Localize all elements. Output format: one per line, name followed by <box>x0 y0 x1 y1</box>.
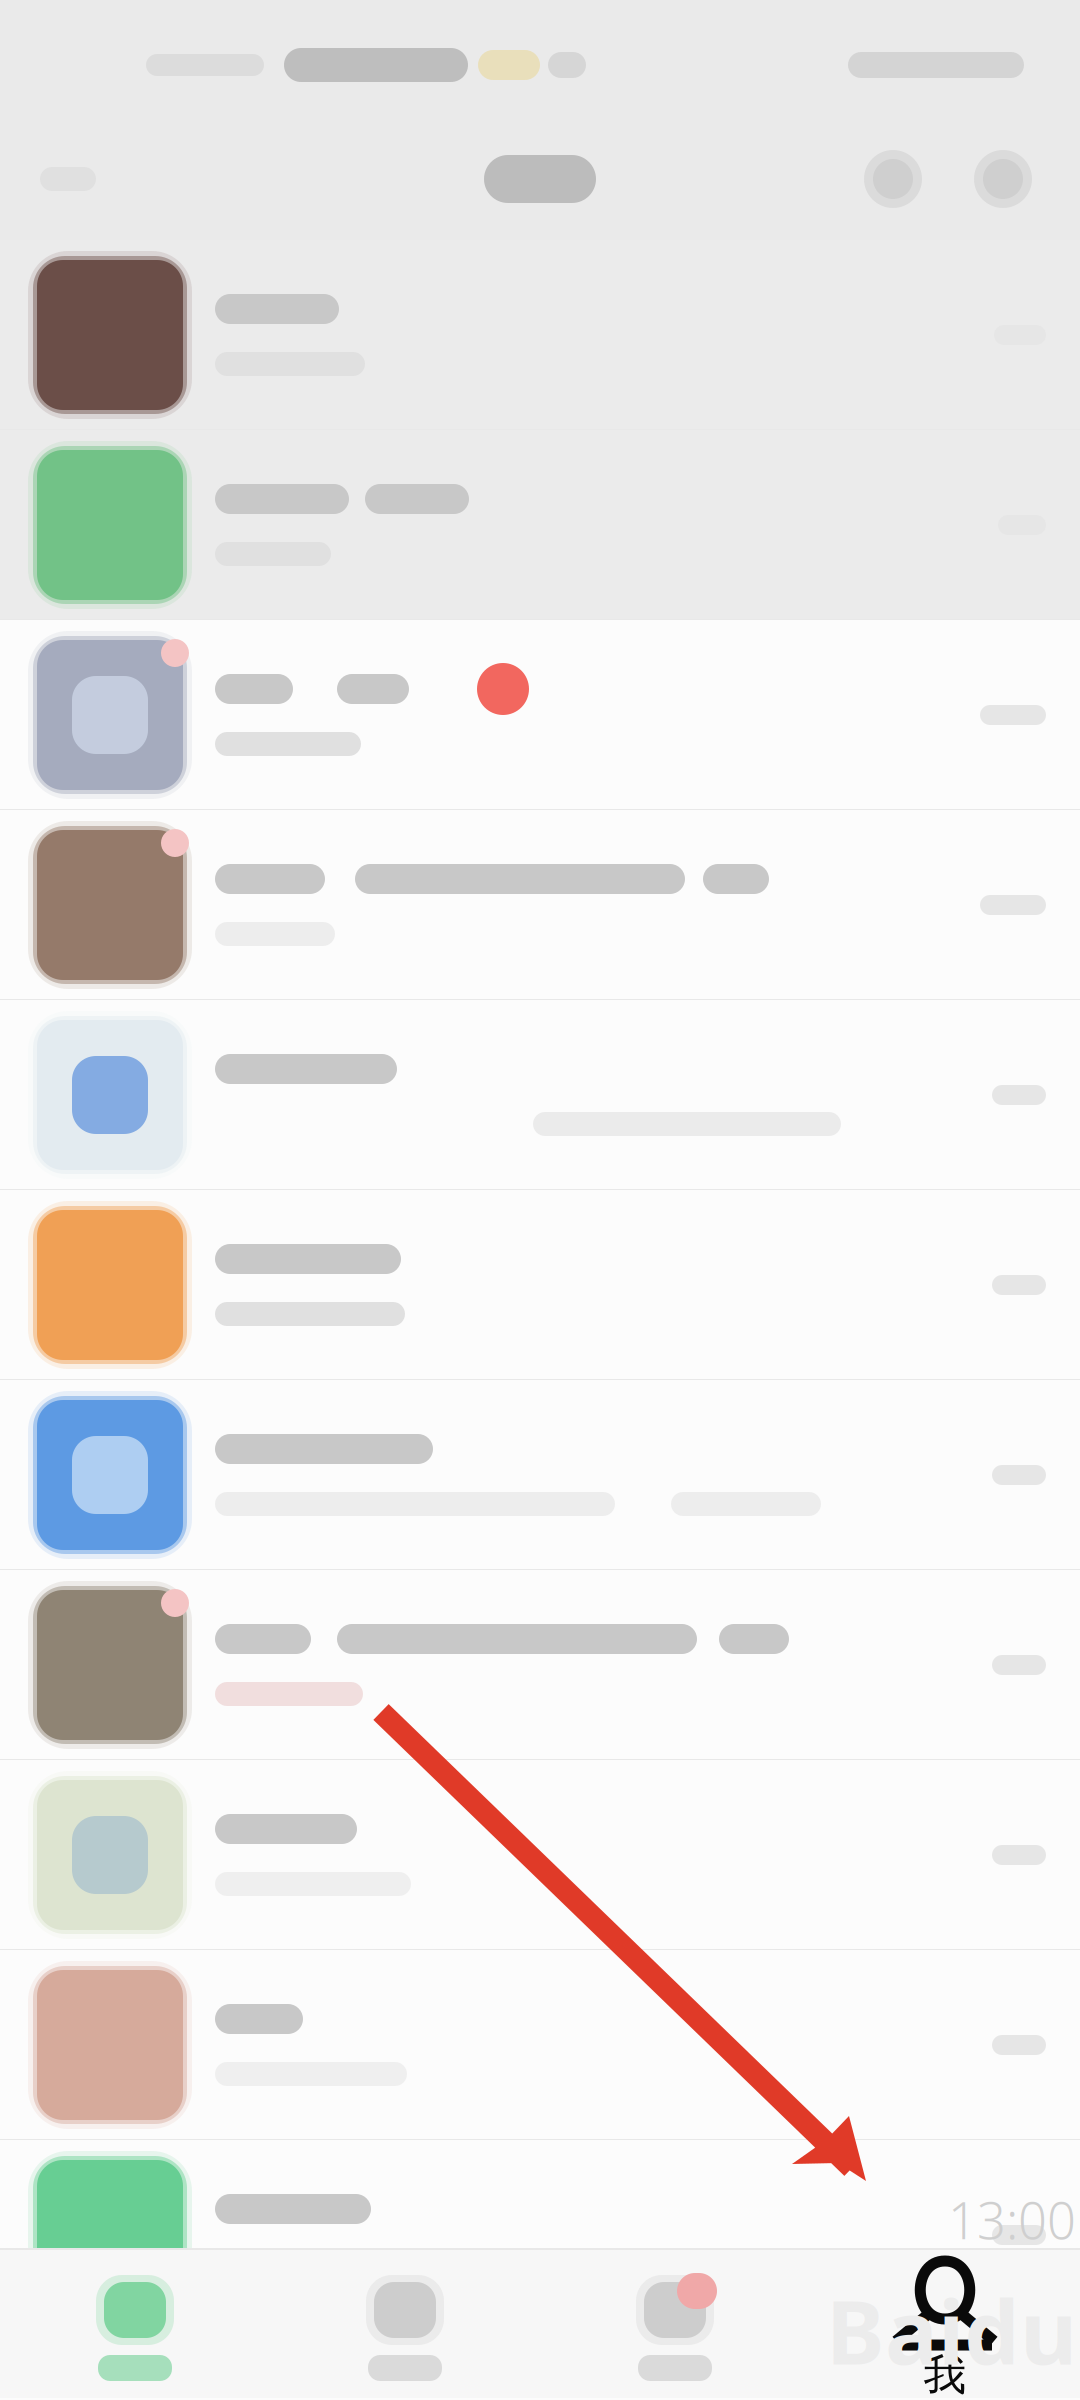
staticText: 我 <box>923 2349 966 2400</box>
button[interactable]: Service account <box>0 1190 1080 1380</box>
button[interactable]: Chat <box>0 2140 1080 2330</box>
button[interactable]: Chat <box>0 1950 1080 2140</box>
button[interactable]: Official account <box>0 1380 1080 1570</box>
button[interactable]: File Transfer <box>0 430 1080 620</box>
button[interactable]: 微信 <box>0 2252 270 2400</box>
button[interactable]: 我 <box>810 2252 1080 2400</box>
button[interactable]: Add <box>948 120 1058 238</box>
button[interactable]: Pinned chat <box>0 240 1080 430</box>
staticText: Baidu 经验 <box>826 2272 1080 2389</box>
button[interactable]: Group chat <box>0 620 1080 810</box>
button[interactable]: Search <box>838 120 948 238</box>
button[interactable]: Subscriptions <box>0 1000 1080 1190</box>
button[interactable]: Group chat <box>0 810 1080 1000</box>
button[interactable]: Group chat <box>0 1570 1080 1760</box>
button[interactable]: 发现 <box>540 2252 810 2400</box>
staticText: 13:00 <box>948 2186 1076 2253</box>
button[interactable]: Chat <box>0 1760 1080 1950</box>
staticText: jingyan.baidu.com <box>826 2391 1080 2400</box>
button[interactable]: 通讯录 <box>270 2252 540 2400</box>
